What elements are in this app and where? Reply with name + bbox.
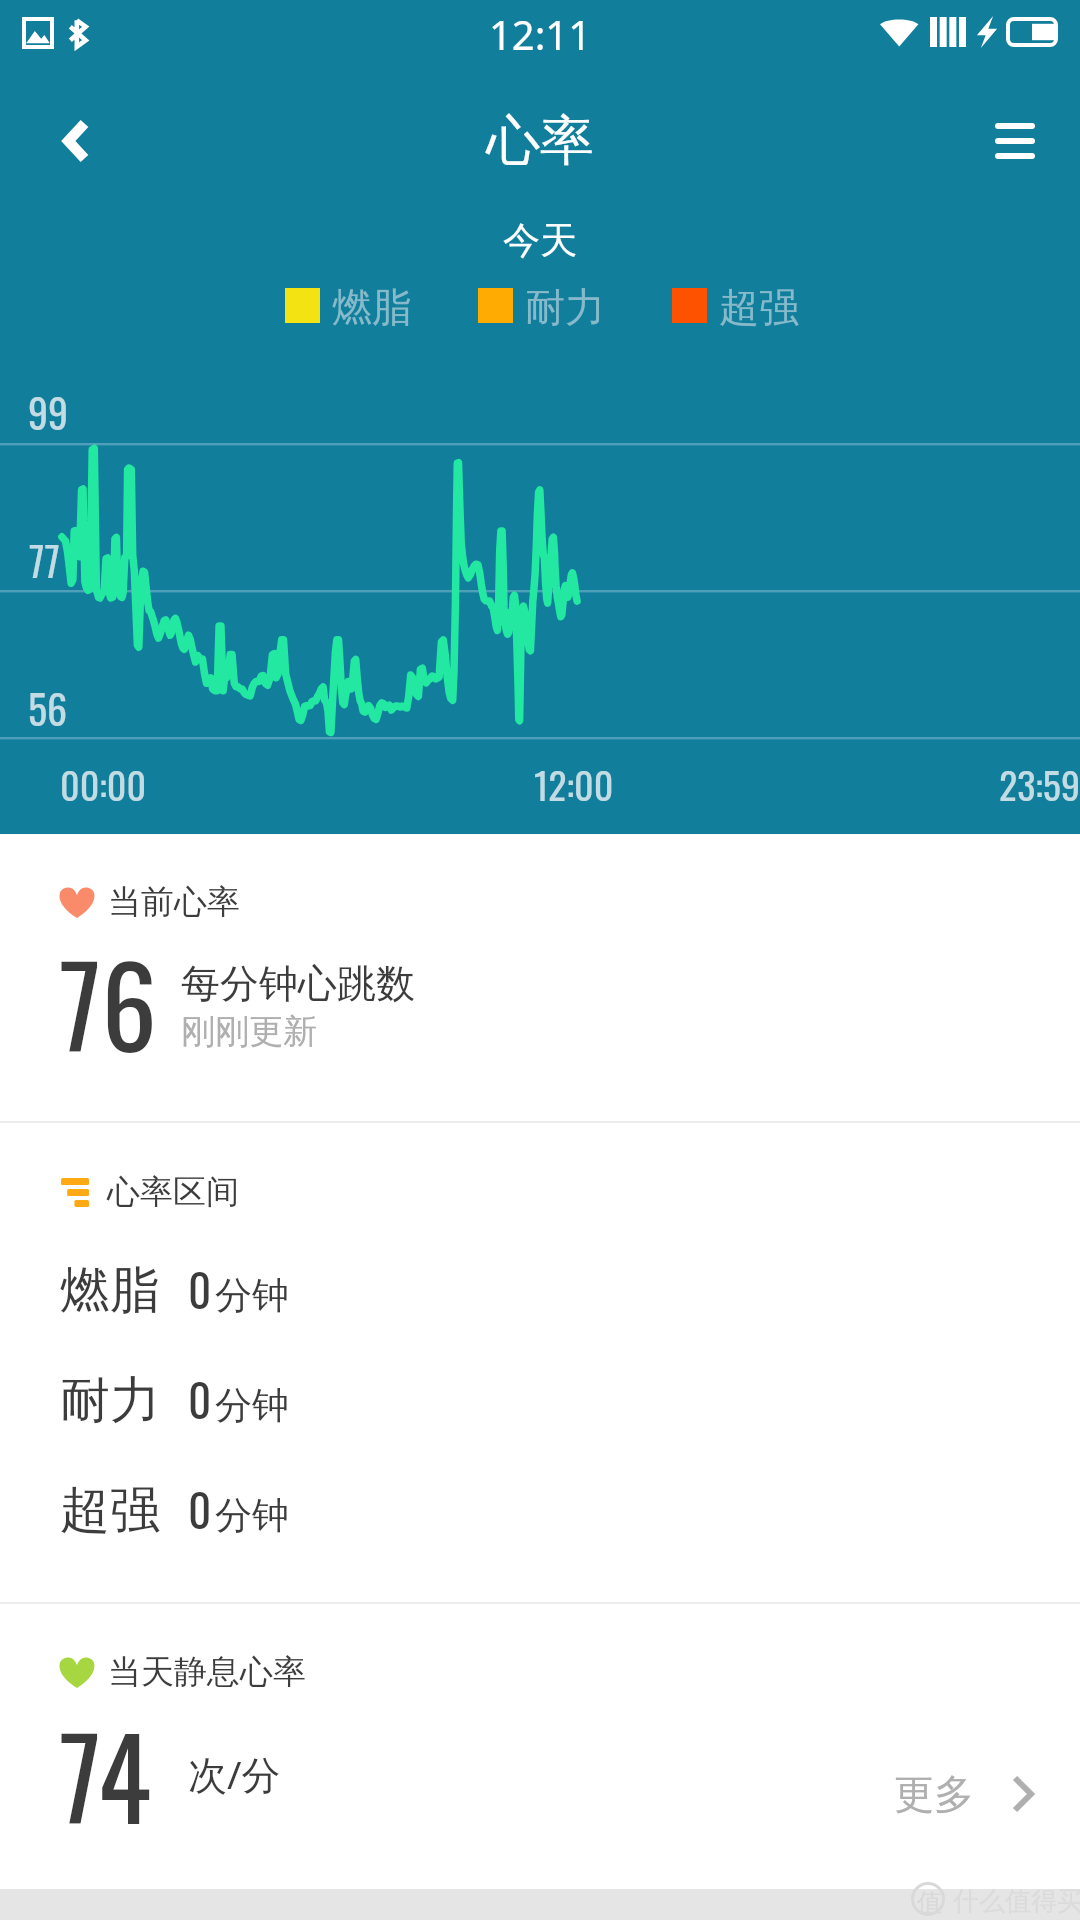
staticText: 燃脂 [332,282,412,332]
staticText: 什么值得买 [953,1885,1080,1918]
staticText: 74 [59,1693,151,1856]
staticText: 00:00 [60,756,147,812]
staticText: 0 [188,1475,212,1542]
staticText: 超强 [719,282,799,332]
staticText: 今天 [0,217,1080,264]
button[interactable]: 心率区间 [0,1123,1080,1602]
staticText: 耐力 [525,282,605,332]
staticText: 分钟 [215,1382,289,1429]
button[interactable]: 当天静息心率 [0,1604,1080,1890]
staticText: 值 [917,1887,942,1918]
button[interactable]: 当前心率 [0,834,1080,1121]
staticText: 0 [188,1255,212,1322]
staticText: 超强 [60,1479,160,1542]
button[interactable]: Back [19,86,129,196]
staticText: 99 [28,382,69,441]
staticText: 更多 [894,1769,974,1819]
staticText: 心率区间 [107,1171,239,1213]
staticText: 每分钟心跳数 [181,959,415,1008]
staticText: 分钟 [215,1272,289,1319]
staticText: 0 [188,1365,212,1432]
staticText: 当前心率 [108,881,240,923]
staticText: 燃脂 [60,1259,160,1322]
staticText: 耐力 [60,1369,160,1432]
button[interactable]: 更多 [894,1769,1034,1819]
staticText: 分钟 [215,1492,289,1539]
staticText: 次/分 [188,1747,281,1800]
staticText: 77 [29,530,60,589]
staticText: 心率 [0,107,1080,175]
staticText: 12:11 [0,7,1080,61]
staticText: 56 [28,678,68,737]
button[interactable]: Menu [960,86,1070,196]
staticText: 当天静息心率 [108,1651,306,1693]
staticText: 23:59 [0,756,1080,812]
staticText: 12:00 [534,756,614,812]
staticText: 76 [59,921,157,1084]
staticText: 刚刚更新 [181,1010,317,1053]
